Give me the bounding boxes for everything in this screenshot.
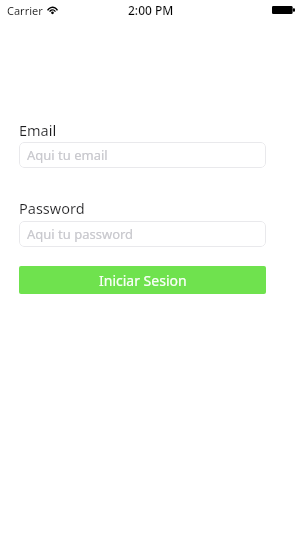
button[interactable]: Aqui tu password	[19, 221, 266, 247]
staticText: Carrier	[7, 3, 43, 18]
staticText: Aqui tu password	[27, 225, 134, 243]
button[interactable]: Iniciar Sesion	[19, 266, 266, 294]
staticText: 2:00 PM	[128, 2, 174, 18]
staticText: Email	[19, 120, 57, 140]
other: Wi-Fi signal	[47, 6, 58, 15]
button[interactable]: Aqui tu email	[19, 142, 266, 168]
staticText: Iniciar Sesion	[99, 271, 187, 290]
staticText: Password	[19, 198, 85, 218]
staticText: Aqui tu email	[27, 146, 108, 164]
other: Battery full	[272, 6, 295, 14]
